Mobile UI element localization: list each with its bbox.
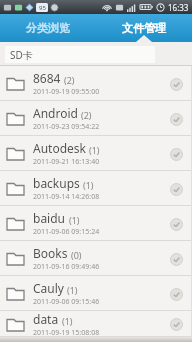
button[interactable]: Select Autodesk bbox=[166, 144, 186, 164]
staticText: 2011-09-23 09:54:22 bbox=[33, 122, 100, 132]
button[interactable]: 8684 bbox=[0, 66, 192, 101]
staticText: (2) bbox=[81, 109, 92, 121]
staticText: baidu bbox=[33, 210, 66, 226]
staticText: 95 bbox=[39, 4, 46, 12]
staticText: SD卡 bbox=[10, 48, 33, 62]
staticText: 分类浏览 bbox=[26, 21, 70, 35]
staticText: data bbox=[33, 311, 59, 327]
button[interactable]: Select backups bbox=[166, 179, 186, 199]
staticText: Cauly bbox=[33, 280, 64, 296]
staticText: (1) bbox=[67, 284, 78, 296]
staticText: 2011-09-19 09:55:00 bbox=[33, 87, 100, 97]
button[interactable]: data bbox=[0, 311, 192, 337]
button[interactable]: Android bbox=[0, 101, 192, 136]
button[interactable]: backups bbox=[0, 171, 192, 206]
staticText: (2) bbox=[64, 74, 75, 86]
staticText: (1) bbox=[69, 214, 80, 226]
staticText: 文件管理 bbox=[122, 21, 166, 35]
staticText: 2011-09-19 15:08:08 bbox=[33, 328, 100, 337]
button[interactable]: Select Books bbox=[166, 249, 186, 269]
staticText: (1) bbox=[83, 179, 94, 191]
button[interactable]: Select 8684 bbox=[166, 74, 186, 94]
button[interactable]: Autodesk bbox=[0, 136, 192, 171]
button[interactable]: Select Cauly bbox=[166, 284, 186, 304]
staticText: 2011-09-14 14:26:08 bbox=[33, 192, 100, 202]
staticText: 8684 bbox=[33, 70, 61, 86]
staticText: 2011-09-06 09:15:24 bbox=[33, 227, 100, 237]
staticText: 2011-09-16 09:49:46 bbox=[33, 262, 100, 272]
button[interactable]: SD卡 bbox=[5, 46, 155, 63]
staticText: (0) bbox=[71, 249, 82, 261]
staticText: backups bbox=[33, 175, 80, 191]
staticText: (1) bbox=[89, 144, 100, 156]
button[interactable]: Select data bbox=[166, 314, 186, 334]
staticText: 2011-09-06 09:15:46 bbox=[33, 297, 100, 307]
button[interactable]: 分类浏览 bbox=[0, 14, 96, 42]
button[interactable]: Books bbox=[0, 241, 192, 276]
button[interactable]: Cauly bbox=[0, 276, 192, 311]
staticText: Autodesk bbox=[33, 140, 86, 156]
button[interactable]: baidu bbox=[0, 206, 192, 241]
staticText: (1) bbox=[62, 315, 73, 327]
staticText: Books bbox=[33, 245, 68, 261]
staticText: 2011-09-21 16:13:40 bbox=[33, 157, 100, 167]
staticText: Android bbox=[33, 105, 78, 121]
button[interactable]: Select baidu bbox=[166, 214, 186, 234]
button[interactable]: 文件管理 bbox=[96, 14, 192, 42]
button[interactable]: Select Android bbox=[166, 109, 186, 129]
staticText: 16:33 bbox=[168, 2, 189, 13]
